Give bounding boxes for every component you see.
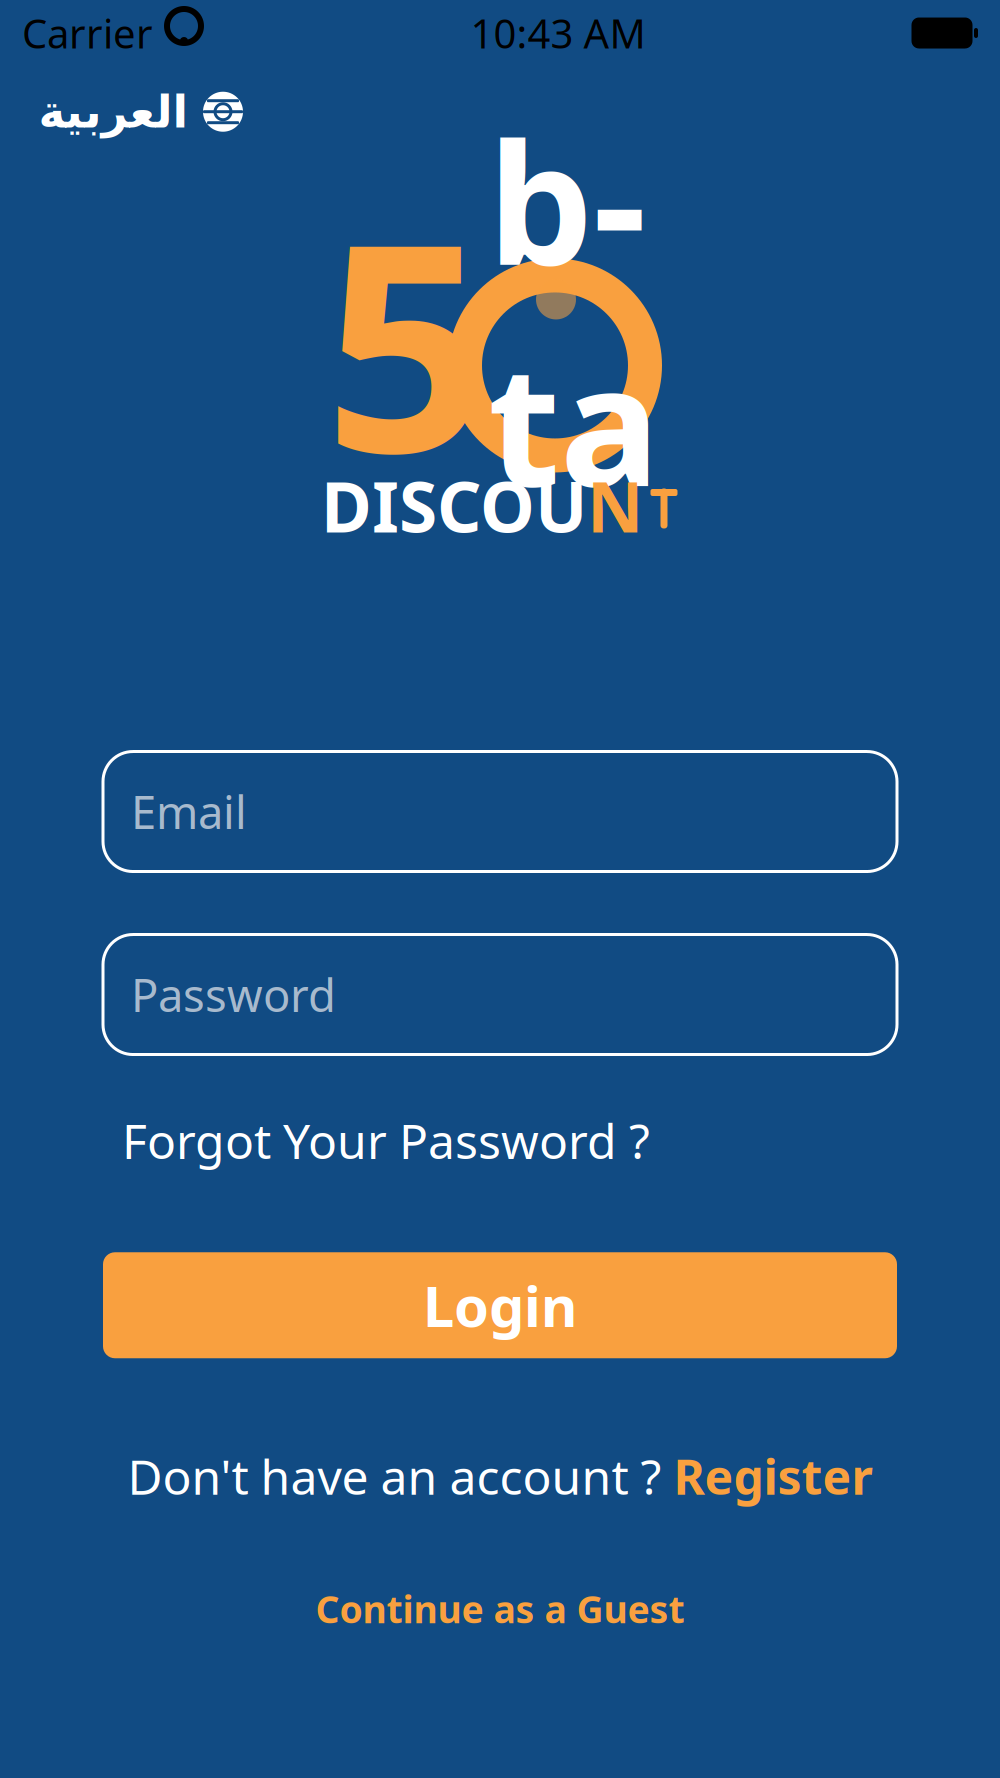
staticText: Login <box>423 1268 577 1342</box>
staticText: Don't have an account ? <box>127 1444 661 1508</box>
staticText: 10:43 AM <box>470 6 645 59</box>
staticText: N <box>587 459 643 552</box>
button[interactable]: Switch language to Arabic <box>28 80 254 143</box>
staticText: Password <box>131 964 336 1025</box>
staticText: DISCOU <box>321 459 587 552</box>
staticText: Email <box>131 781 247 842</box>
button[interactable]: Forgot Your Password ? <box>122 1102 650 1178</box>
button[interactable]: Don't have an account ? <box>127 1438 872 1514</box>
staticText: 5 <box>324 150 488 531</box>
staticText: Register <box>673 1444 872 1508</box>
staticText: العربية <box>38 86 188 137</box>
button[interactable]: Continue as a Guest <box>299 1576 700 1642</box>
staticText: bta <box>488 89 660 532</box>
button[interactable]: Password <box>103 934 897 1054</box>
staticText: Continue as a Guest <box>315 1584 684 1634</box>
button[interactable]: Login <box>103 1252 897 1358</box>
button[interactable]: Email <box>103 751 897 871</box>
staticText: Forgot Your Password ? <box>122 1108 650 1172</box>
staticText: Carrier <box>22 6 153 59</box>
